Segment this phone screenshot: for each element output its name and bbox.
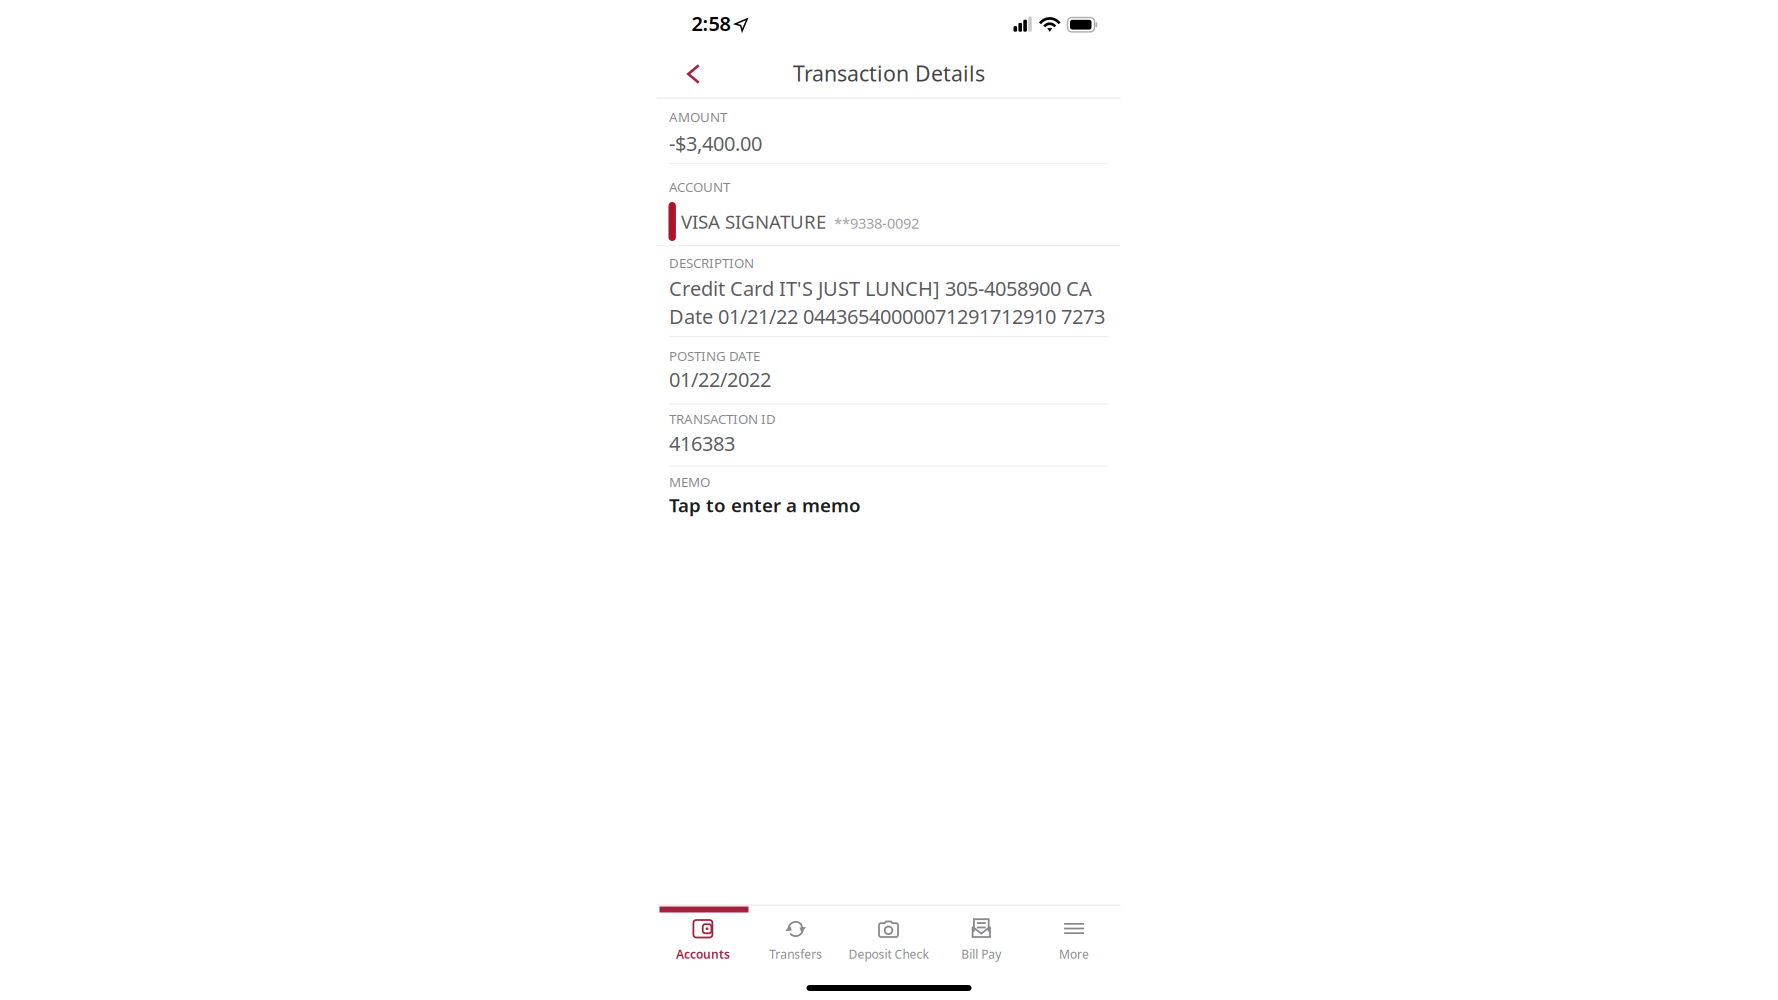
staticText: **9338-0092	[834, 213, 919, 233]
staticText: Credit Card IT'S JUST LUNCH] 305-4058900…	[669, 275, 1092, 302]
staticText: Deposit Check	[848, 946, 928, 962]
staticText: Transaction Details	[793, 59, 985, 87]
staticText: Bill Pay	[961, 946, 1001, 962]
button[interactable]: Accounts	[656, 906, 749, 962]
staticText: Transfers	[769, 946, 822, 962]
staticText: Accounts	[676, 946, 730, 962]
button[interactable]: Deposit Check	[842, 906, 935, 962]
button[interactable]: Back	[671, 52, 715, 96]
staticText: 416383	[669, 430, 735, 457]
staticText: Tap to enter a memo	[669, 493, 861, 517]
staticText: MEMO	[669, 473, 710, 491]
staticText: Date 01/21/22 04436540000071291712910 72…	[669, 303, 1105, 330]
staticText: DESCRIPTION	[669, 254, 754, 272]
staticText: More	[1059, 946, 1089, 962]
staticText: AMOUNT	[669, 108, 727, 126]
button[interactable]: More	[1028, 906, 1120, 962]
button[interactable]: Transfers	[749, 906, 842, 962]
staticText: -$3,400.00	[669, 130, 762, 157]
staticText: VISA SIGNATURE	[681, 209, 826, 234]
staticText: 2:58	[691, 10, 730, 37]
button[interactable]: MEMO	[669, 473, 1108, 525]
button[interactable]: Bill Pay	[935, 906, 1028, 962]
staticText: POSTING DATE	[669, 347, 760, 365]
staticText: ACCOUNT	[669, 178, 730, 196]
staticText: TRANSACTION ID	[669, 410, 776, 428]
staticText: 01/22/2022	[669, 366, 771, 393]
